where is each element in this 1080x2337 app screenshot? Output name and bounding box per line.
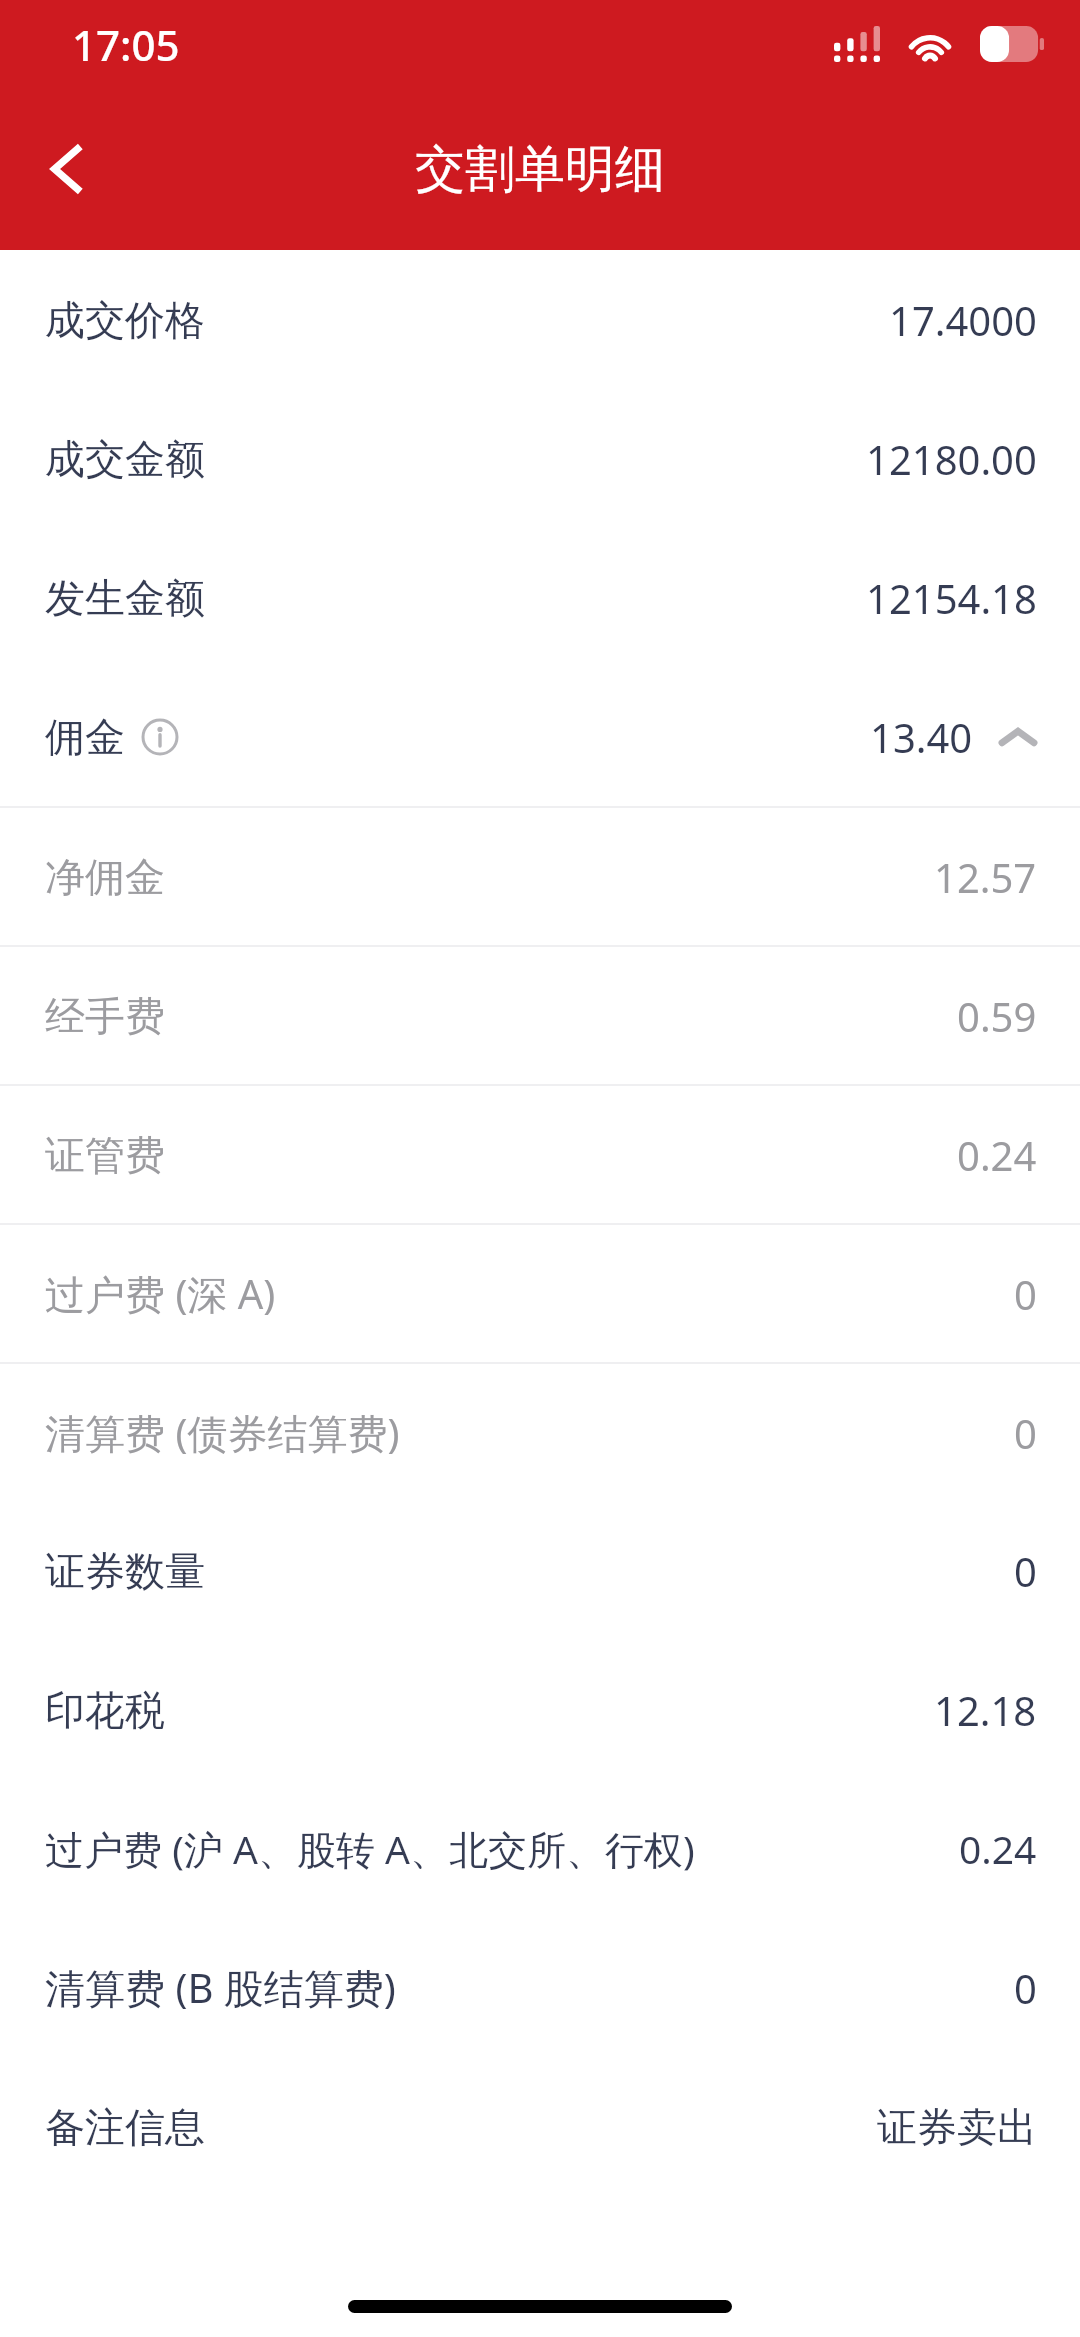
staticText: 17.4000	[889, 293, 1037, 347]
staticText: 印花税	[45, 1685, 165, 1735]
staticText: 成交金额	[45, 434, 205, 484]
staticText: 净佣金	[45, 852, 165, 902]
staticText: 12180.00	[866, 432, 1037, 486]
button[interactable]: 发生金额	[0, 528, 1080, 667]
button[interactable]: 佣金	[0, 667, 1080, 806]
staticText: 过户费 (深 A)	[45, 1266, 276, 1321]
staticText: 0.24	[959, 1822, 1037, 1875]
staticText: 证管费	[45, 1130, 165, 1180]
button[interactable]: 成交金额	[0, 389, 1080, 528]
staticText: 0	[1014, 1406, 1037, 1460]
staticText: 0	[1014, 1961, 1037, 2015]
staticText: 12.57	[934, 850, 1037, 904]
button[interactable]: Back	[14, 115, 122, 223]
button[interactable]: 成交价格	[0, 250, 1080, 389]
button[interactable]: 印花税	[0, 1640, 1080, 1779]
staticText: 清算费 (债券结算费)	[45, 1405, 400, 1460]
button[interactable]: 清算费 (债券结算费)	[0, 1364, 1080, 1501]
button[interactable]: 过户费 (深 A)	[0, 1225, 1080, 1362]
button[interactable]: 经手费	[0, 947, 1080, 1084]
staticText: 17:05	[72, 16, 180, 73]
button[interactable]: 过户费 (沪 A、股转 A、北交所、行权)	[0, 1779, 1080, 1918]
staticText: 12154.18	[866, 571, 1037, 625]
staticText: 清算费 (B 股结算费)	[45, 1960, 396, 2015]
staticText: 发生金额	[45, 573, 205, 623]
button[interactable]: 证管费	[0, 1086, 1080, 1223]
staticText: 备注信息	[45, 2102, 205, 2152]
staticText: 12.18	[934, 1683, 1037, 1737]
button[interactable]: 清算费 (B 股结算费)	[0, 1918, 1080, 2057]
staticText: 0.59	[957, 989, 1037, 1043]
staticText: 过户费 (沪 A、股转 A、北交所、行权)	[45, 1822, 695, 1875]
staticText: 0	[1014, 1544, 1037, 1598]
staticText: 成交价格	[45, 295, 205, 345]
staticText: 佣金	[45, 712, 125, 762]
staticText: 证券卖出	[877, 2102, 1037, 2152]
staticText: 证券数量	[45, 1546, 205, 1596]
staticText: 交割单明细	[415, 138, 665, 201]
button[interactable]: 证券数量	[0, 1501, 1080, 1640]
staticText: 0.24	[957, 1128, 1037, 1182]
button[interactable]: 备注信息	[0, 2057, 1080, 2196]
staticText: 0	[1014, 1267, 1037, 1321]
staticText: 13.40	[870, 710, 973, 764]
button[interactable]: 净佣金	[0, 808, 1080, 945]
staticText: 经手费	[45, 991, 165, 1041]
